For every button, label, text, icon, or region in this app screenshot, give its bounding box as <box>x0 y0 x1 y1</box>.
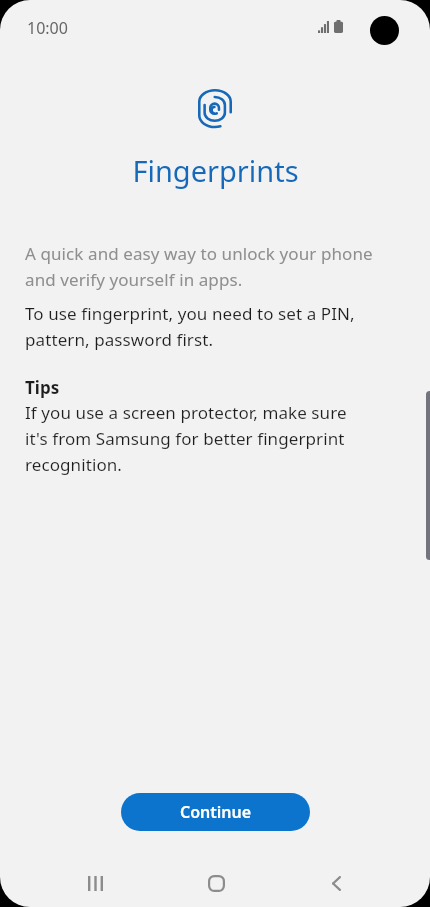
staticText: To use fingerprint, you need to set a PI… <box>25 300 355 352</box>
staticText: Tips <box>25 376 60 399</box>
staticText: Fingerprints <box>132 151 299 190</box>
button[interactable]: Continue <box>121 793 310 831</box>
staticText: If you use a screen protector, make sure… <box>25 399 347 477</box>
staticText: A quick and easy way to unlock your phon… <box>25 240 373 292</box>
staticText: 10:00 <box>27 17 68 39</box>
button[interactable]: Recent apps <box>71 859 119 907</box>
button[interactable]: Back <box>312 859 360 907</box>
staticText: Continue <box>180 801 252 823</box>
button[interactable]: Home <box>192 859 240 907</box>
